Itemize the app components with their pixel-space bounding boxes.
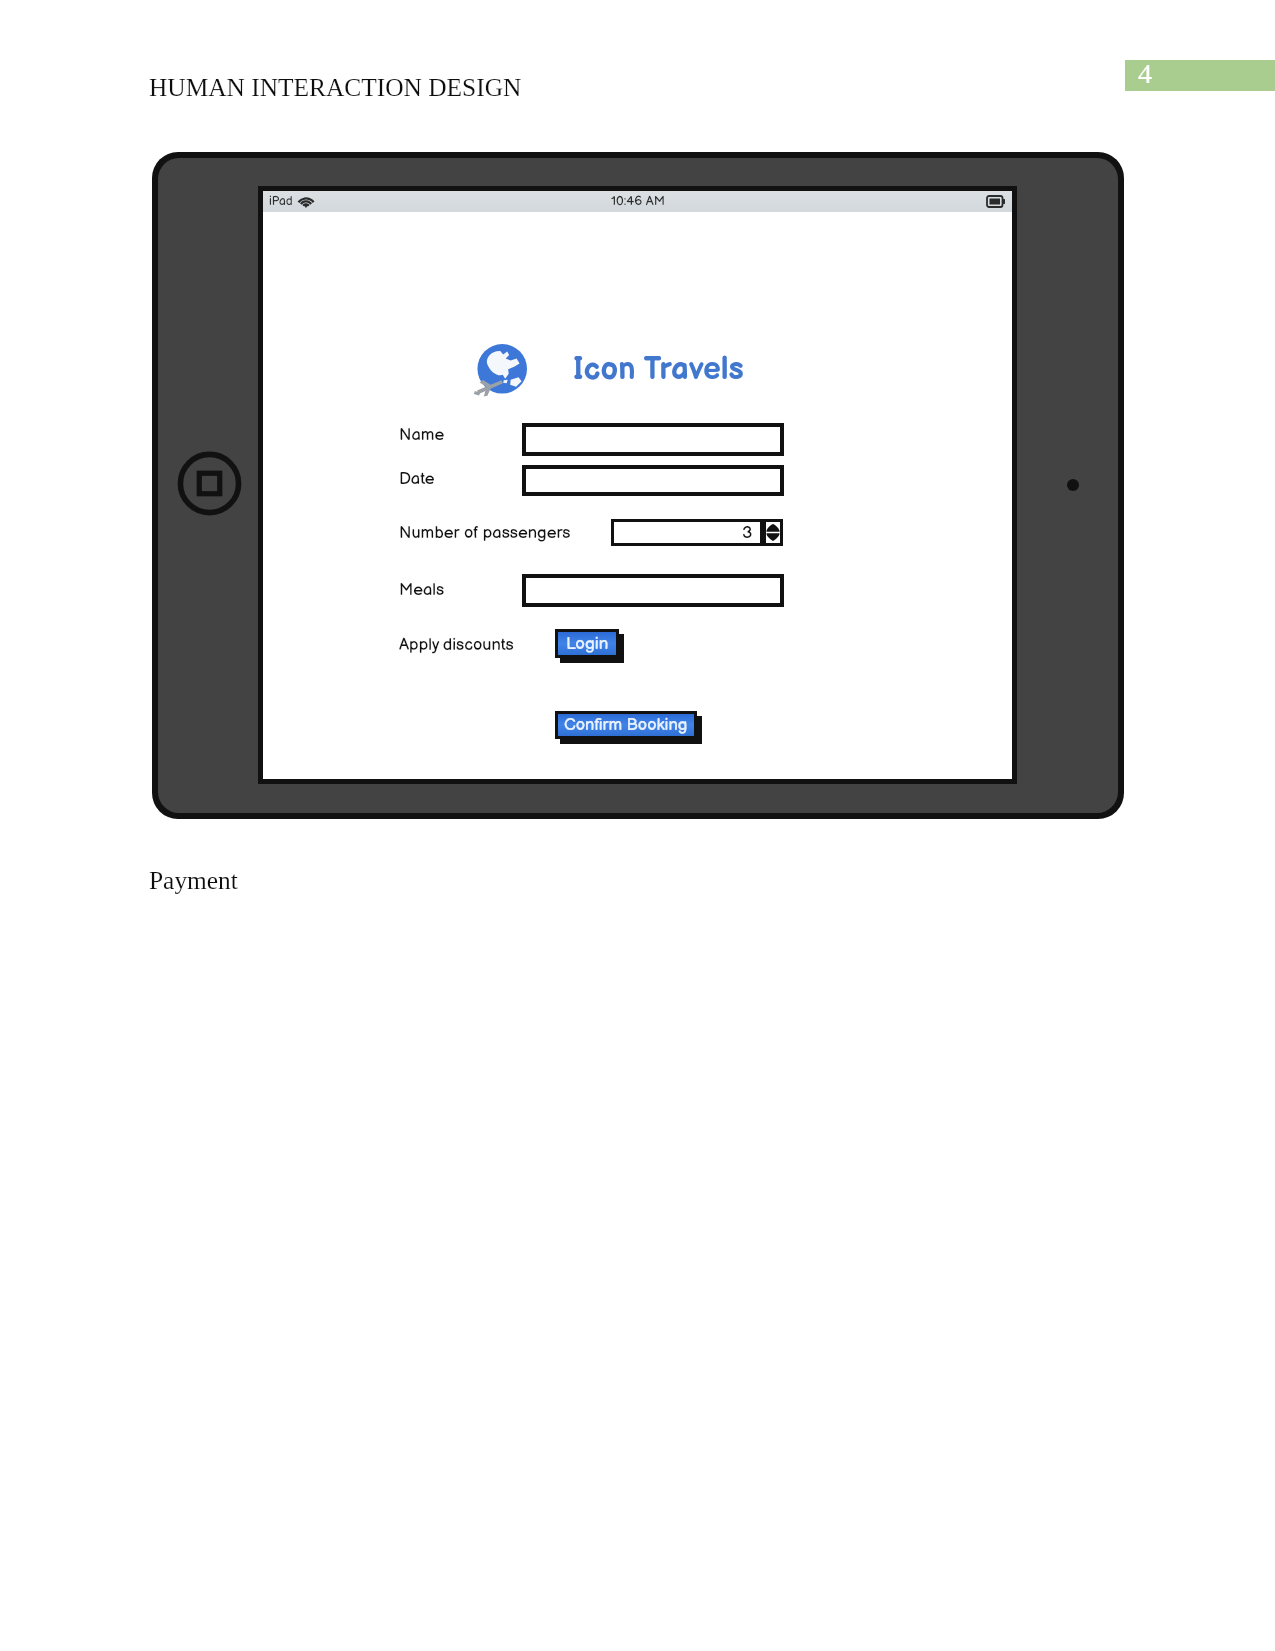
button[interactable]: Confirm Booking: [558, 714, 694, 736]
staticText: Apply discounts: [399, 635, 514, 655]
staticText: Number of passengers: [399, 523, 571, 543]
button[interactable]: Home: [177, 451, 242, 516]
staticText: 10:46 AM: [611, 193, 665, 209]
staticText: Payment: [149, 866, 238, 894]
button[interactable]: 3: [611, 519, 783, 546]
staticText: iPad: [269, 194, 293, 208]
staticText: Confirm Booking: [564, 715, 688, 735]
staticText: HUMAN INTERACTION DESIGN: [149, 73, 522, 101]
staticText: 4: [1138, 58, 1152, 89]
staticText: Date: [399, 469, 435, 489]
staticText: Meals: [399, 580, 445, 600]
staticText: Name: [399, 425, 445, 445]
staticText: Login: [566, 634, 609, 654]
staticText: Icon Travels: [573, 351, 744, 388]
button[interactable]: Login: [558, 632, 616, 655]
staticText: 3: [742, 523, 753, 543]
other: Stepper: [766, 522, 780, 543]
